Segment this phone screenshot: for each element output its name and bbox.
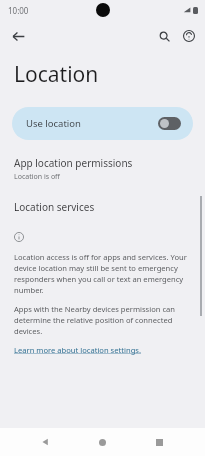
button[interactable]: Recents [148,431,170,453]
staticText: 10:00 [8,5,29,16]
button[interactable]: Search [152,24,176,48]
button[interactable]: Learn more about location settings. [14,345,142,355]
staticText: Location access is off for apps and serv… [14,252,191,295]
button[interactable]: Help [177,24,201,48]
button[interactable]: Back [34,431,56,453]
staticText: Apps with the Nearby devices permission … [14,304,191,336]
staticText: Learn more about location settings. [14,345,142,355]
button[interactable]: Location services [0,198,205,216]
staticText: Use location [26,117,81,130]
staticText: Location [14,60,99,89]
staticText: Location is off [14,172,60,182]
button[interactable]: Home [91,431,113,453]
button[interactable]: Use location [12,107,193,140]
staticText: Location services [14,200,95,214]
button[interactable]: Back [6,24,30,48]
staticText: App location permissions [14,156,133,170]
button[interactable]: App location permissions [0,154,205,184]
